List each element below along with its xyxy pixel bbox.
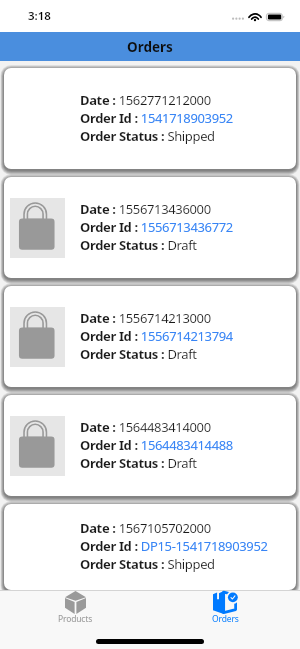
- staticText: Order Status : Shipped: [80, 127, 215, 145]
- staticText: Order Status : Draft: [80, 236, 197, 254]
- staticText: Order Status : Draft: [80, 454, 197, 472]
- staticText: Date : 1556714213000: [80, 309, 211, 327]
- staticText: Order Id : 1564483414488: [80, 436, 233, 454]
- staticText: Order Status : Shipped: [80, 555, 215, 573]
- staticText: Order Id : DP15-1541718903952: [80, 537, 268, 555]
- staticText: Orders: [127, 38, 173, 56]
- button[interactable]: Products: [0, 591, 150, 624]
- staticText: Date : 1556713436000: [80, 200, 211, 218]
- staticText: Order Status : Draft: [80, 345, 197, 363]
- button[interactable]: Date : 1562771212000: [4, 68, 296, 169]
- button[interactable]: Date : 1556714213000: [4, 286, 296, 387]
- button[interactable]: Date : 1556713436000: [4, 177, 296, 278]
- staticText: Orders: [212, 613, 239, 623]
- button[interactable]: Date : 1567105702000: [4, 504, 296, 590]
- button[interactable]: Orders: [150, 591, 300, 624]
- staticText: Date : 1564483414000: [80, 418, 211, 436]
- staticText: Date : 1567105702000: [80, 519, 211, 537]
- button[interactable]: Date : 1564483414000: [4, 395, 296, 496]
- staticText: 3:18: [28, 8, 51, 24]
- button[interactable]: Orders: [0, 32, 300, 61]
- staticText: Order Id : 1556714213794: [80, 327, 233, 345]
- staticText: Date : 1562771212000: [80, 91, 211, 109]
- staticText: Products: [58, 613, 93, 623]
- staticText: Order Id : 1556713436772: [80, 218, 233, 236]
- staticText: Order Id : 1541718903952: [80, 109, 233, 127]
